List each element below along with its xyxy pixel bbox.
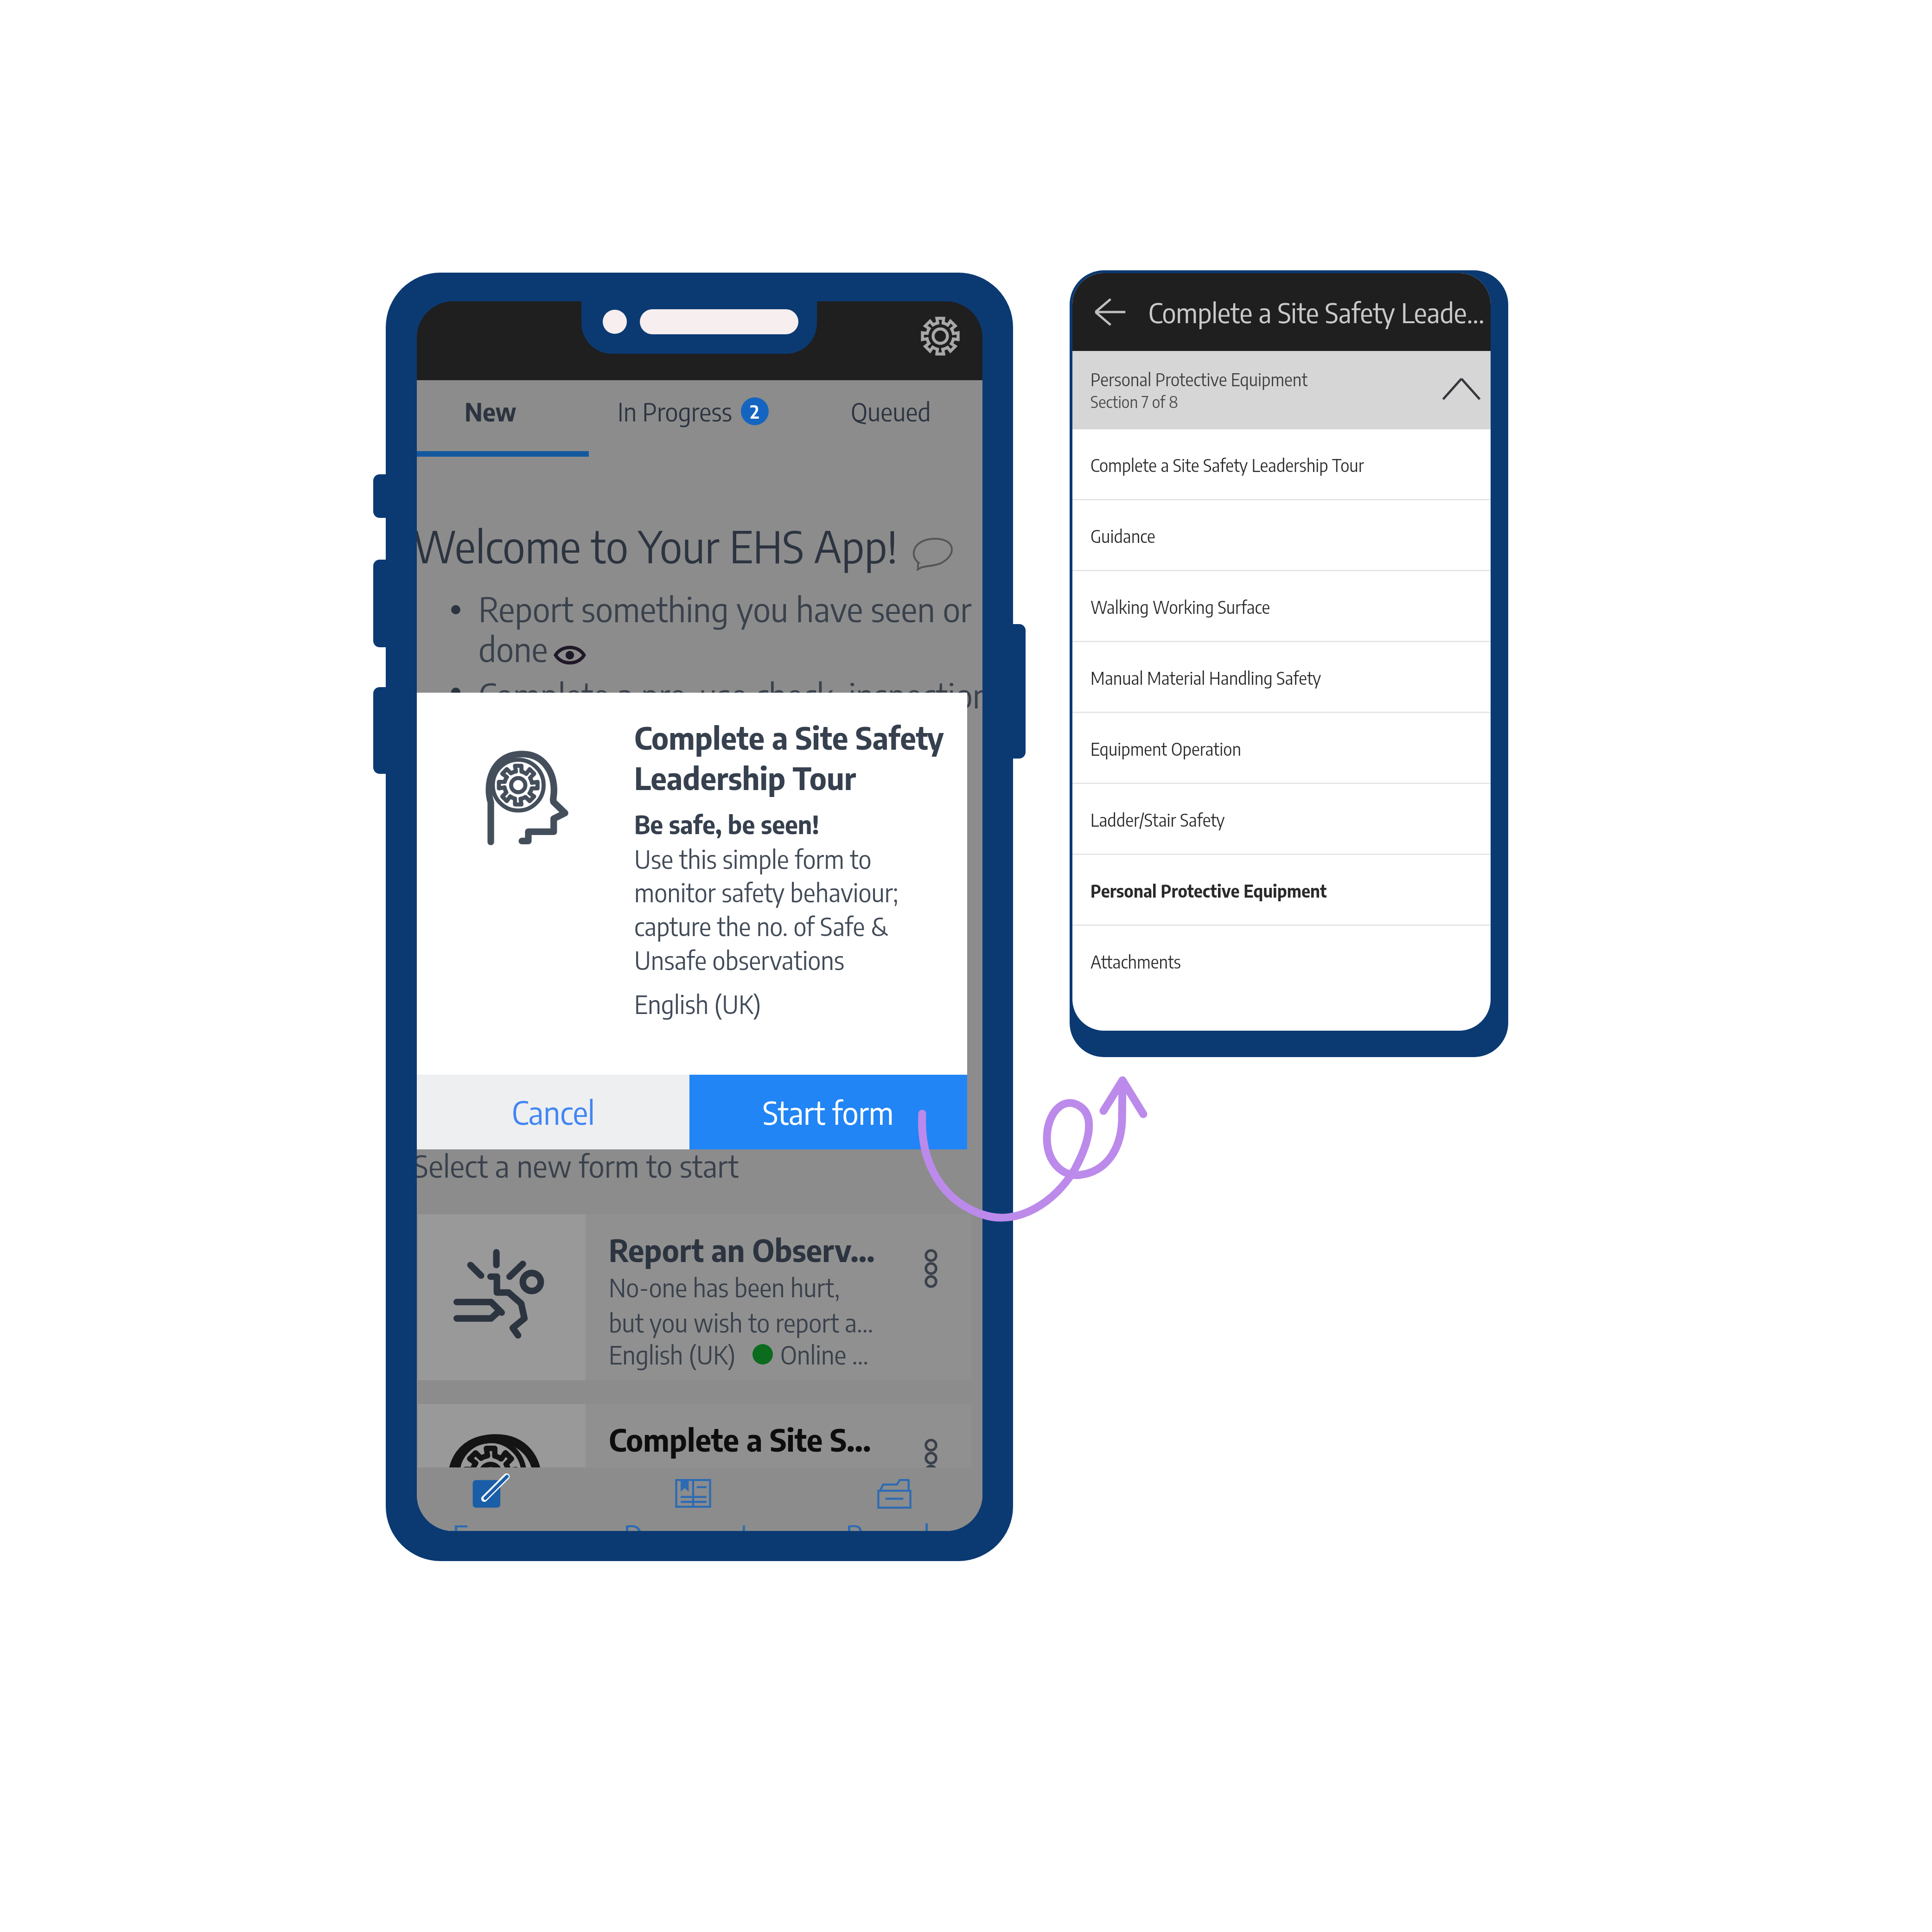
button[interactable]: Ladder/Stair Safety [1072, 784, 1491, 855]
button[interactable]: Complete a Site S... [418, 1404, 971, 1531]
button[interactable]: Guidance [1072, 500, 1491, 571]
staticText: Complete a Site Safety Leade... [1148, 295, 1485, 329]
staticText: In Progress [618, 395, 733, 427]
button[interactable]: Queued [810, 380, 971, 457]
button[interactable]: Cancel [417, 1075, 689, 1149]
button[interactable]: Back [1084, 287, 1135, 338]
staticText: but you wish to report a... [609, 1307, 874, 1338]
staticText: 2 [750, 400, 759, 423]
button[interactable]: Equipment Operation [1072, 713, 1491, 784]
staticText: English (UK) [609, 1339, 736, 1370]
button[interactable]: Start form [689, 1075, 967, 1149]
button[interactable]: More options [921, 1404, 971, 1531]
button[interactable]: Walking Working Surface [1072, 571, 1491, 642]
button[interactable]: In Progress [564, 380, 822, 457]
button[interactable]: Forms [417, 1467, 564, 1531]
staticText: Documents [624, 1517, 762, 1531]
staticText: English (UK) [634, 988, 761, 1019]
staticText: Report something you have seen or done [478, 587, 972, 670]
staticText: Walking Working Surface [1090, 596, 1270, 618]
button[interactable]: Personal Protective Equipment [1072, 351, 1491, 429]
staticText: Personal Protective Equipment [1090, 880, 1327, 901]
staticText: Be safe, be seen! [634, 808, 819, 839]
staticText: Section 7 of 8 [1090, 392, 1178, 412]
staticText: Welcome to Your EHS App! [417, 518, 898, 573]
staticText: Start form [763, 1093, 894, 1132]
button[interactable]: Complete a Site Safety Leadership Tour [1072, 429, 1491, 500]
button[interactable]: Attachments [1072, 926, 1491, 997]
button[interactable]: Records [821, 1467, 967, 1531]
staticText: Equipment Operation [1090, 738, 1241, 759]
staticText: Ladder/Stair Safety [1090, 809, 1225, 830]
staticText: Report an Observ... [609, 1230, 875, 1269]
button[interactable]: Report an Observ... [418, 1214, 971, 1380]
staticText: Forms [453, 1517, 529, 1531]
staticText: Queued [851, 395, 931, 427]
staticText: Guidance [1090, 525, 1155, 547]
staticText: Records [846, 1517, 943, 1531]
button[interactable]: Documents [564, 1467, 821, 1531]
staticText: Complete a pre-use check, inspection [478, 674, 982, 716]
staticText: No-one has been hurt, [609, 1271, 840, 1302]
staticText: Personal Protective Equipment [1090, 369, 1308, 390]
button[interactable]: More options [921, 1214, 971, 1380]
staticText: Use this simple form to monitor safety b… [634, 843, 899, 976]
staticText: Online ... [780, 1339, 868, 1370]
staticText: Manual Material Handling Safety [1090, 667, 1321, 689]
staticText: Select a new form to start [417, 1146, 739, 1184]
button[interactable]: Settings [915, 311, 966, 362]
staticText: Complete a Site Safety Leadership Tour [1090, 454, 1365, 476]
button[interactable]: Personal Protective Equipment [1072, 855, 1491, 926]
staticText: Attachments [1090, 951, 1181, 972]
staticText: New [465, 395, 516, 427]
staticText: Cancel [512, 1092, 595, 1132]
staticText: Complete a Site S... [609, 1420, 871, 1459]
button[interactable]: Manual Material Handling Safety [1072, 642, 1491, 713]
staticText: Complete a Site Safety Leadership Tour [634, 718, 944, 797]
button[interactable]: New [417, 380, 564, 457]
